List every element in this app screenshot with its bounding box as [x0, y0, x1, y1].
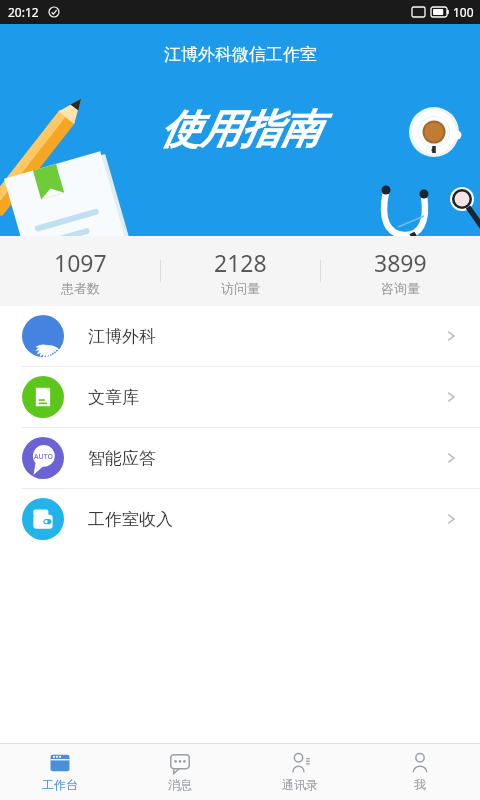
- button[interactable]: 江博外科: [0, 306, 480, 366]
- button[interactable]: 通讯录: [240, 744, 360, 800]
- staticText: 3899: [374, 247, 427, 278]
- staticText: 消息: [168, 777, 192, 792]
- button[interactable]: 消息: [120, 744, 240, 800]
- staticText: 我: [414, 777, 426, 792]
- staticText: 100: [453, 4, 474, 20]
- button[interactable]: 工作室收入: [0, 489, 480, 549]
- staticText: 智能应答: [88, 448, 156, 469]
- staticText: 1097: [54, 247, 107, 278]
- button[interactable]: AUTO: [0, 428, 480, 488]
- staticText: 工作室收入: [88, 509, 173, 530]
- staticText: 2128: [214, 247, 267, 278]
- staticText: 访问量: [221, 280, 260, 296]
- button[interactable]: 工作台: [0, 744, 120, 800]
- staticText: 咨询量: [381, 280, 420, 296]
- staticText: 文章库: [88, 387, 139, 408]
- button[interactable]: 3899: [321, 247, 480, 296]
- button[interactable]: 2128: [161, 247, 320, 296]
- staticText: 20:12: [8, 4, 39, 20]
- staticText: 工作台: [42, 777, 78, 792]
- staticText: 江博外科: [88, 326, 156, 347]
- staticText: 患者数: [61, 280, 100, 296]
- staticText: 江博外科微信工作室: [164, 44, 317, 65]
- staticText: AUTO: [34, 452, 54, 462]
- button[interactable]: 文章库: [0, 367, 480, 427]
- button[interactable]: 我: [360, 744, 480, 800]
- staticText: 通讯录: [282, 777, 318, 792]
- button[interactable]: 1097: [0, 247, 160, 296]
- staticText: 使用指南: [160, 104, 320, 154]
